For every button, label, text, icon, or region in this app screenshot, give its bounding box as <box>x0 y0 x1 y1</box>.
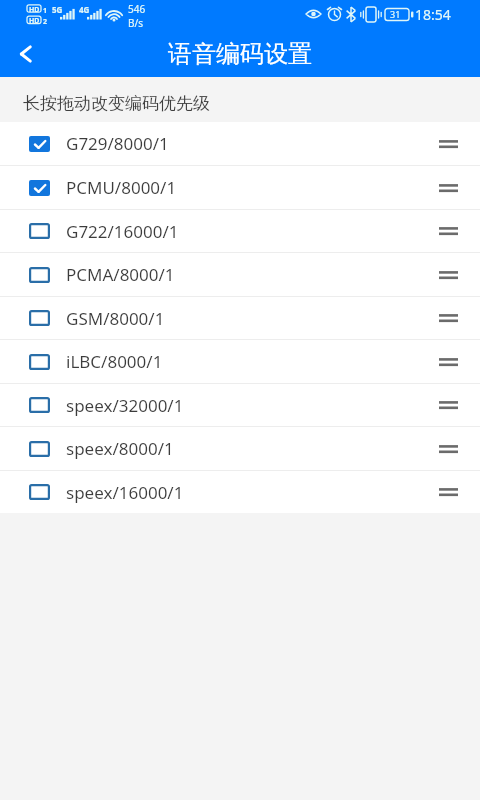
staticText: B/s <box>128 16 144 30</box>
staticText: GSM/8000/1 <box>66 307 165 330</box>
staticText: 31 <box>390 8 401 20</box>
button[interactable]: G729/8000/1 <box>0 122 480 165</box>
staticText: speex/32000/1 <box>66 394 184 417</box>
button[interactable]: iLBC/8000/1 <box>0 340 480 383</box>
button[interactable]: speex/16000/1 <box>0 471 480 513</box>
button[interactable]: Back <box>0 30 52 77</box>
staticText: 语音编码设置 <box>168 39 312 69</box>
button[interactable]: PCMU/8000/1 <box>0 166 480 209</box>
staticText: 5G <box>52 4 63 15</box>
staticText: G729/8000/1 <box>66 132 169 155</box>
staticText: HD <box>29 16 40 26</box>
staticText: PCMU/8000/1 <box>66 176 177 199</box>
staticText: iLBC/8000/1 <box>66 350 163 373</box>
button[interactable]: speex/32000/1 <box>0 384 480 426</box>
staticText: G722/16000/1 <box>66 220 179 243</box>
staticText: PCMA/8000/1 <box>66 263 175 286</box>
button[interactable]: G722/16000/1 <box>0 210 480 252</box>
button[interactable]: GSM/8000/1 <box>0 297 480 339</box>
staticText: speex/8000/1 <box>66 437 174 460</box>
staticText: 长按拖动改变编码优先级 <box>23 93 210 114</box>
staticText: 1 <box>43 6 48 16</box>
staticText: HD <box>29 5 40 15</box>
staticText: 546 <box>128 2 146 16</box>
button[interactable]: speex/8000/1 <box>0 427 480 470</box>
staticText: 2 <box>43 17 48 27</box>
staticText: 18:54 <box>415 5 451 24</box>
button[interactable]: PCMA/8000/1 <box>0 253 480 296</box>
staticText: 4G <box>79 4 90 15</box>
staticText: speex/16000/1 <box>66 481 184 504</box>
